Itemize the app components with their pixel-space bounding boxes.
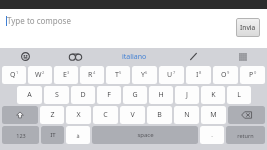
staticText: L (237, 90, 241, 100)
staticText: F (107, 90, 111, 100)
button[interactable]: B (147, 106, 172, 124)
button[interactable]: D (71, 86, 95, 104)
staticText: R (88, 70, 93, 80)
staticText: Invia (240, 23, 256, 32)
button[interactable]: T (106, 66, 130, 84)
button[interactable]: I (186, 66, 211, 84)
button[interactable]: E (54, 66, 78, 84)
staticText: IT (50, 131, 56, 139)
staticText: G (132, 90, 138, 100)
button[interactable]: italiano (100, 48, 169, 65)
staticText: 9 (227, 70, 230, 75)
staticText: W (35, 70, 42, 80)
button[interactable]: P (240, 66, 265, 84)
staticText: 5 (119, 70, 122, 75)
staticText: 2 (42, 70, 45, 75)
button[interactable]: U (159, 66, 184, 84)
button[interactable]: F (97, 86, 121, 104)
button[interactable]: Shift (2, 106, 38, 124)
staticText: D (80, 90, 86, 100)
staticText: Z (50, 110, 55, 120)
button[interactable]: Invia (236, 18, 260, 37)
staticText: 7 (173, 70, 176, 75)
staticText: C (103, 110, 108, 120)
button[interactable]: Handwriting (169, 48, 218, 65)
button[interactable]: 123 (2, 126, 39, 144)
button[interactable]: return (226, 126, 265, 144)
button[interactable]: K (201, 86, 225, 104)
button[interactable]: V (120, 106, 145, 124)
staticText: Type to compose (7, 15, 71, 26)
button[interactable]: R (80, 66, 104, 84)
staticText: space (137, 131, 154, 139)
staticText: M (210, 110, 217, 120)
staticText: . (211, 131, 213, 139)
button[interactable]: IT (41, 126, 64, 144)
button[interactable]: Emoji (0, 48, 50, 65)
staticText: K (211, 90, 216, 100)
button[interactable]: Keyboard layout (218, 48, 267, 65)
button[interactable]: Y (132, 66, 157, 84)
staticText: U (167, 70, 173, 80)
staticText: 4 (93, 70, 96, 75)
staticText: S (55, 90, 59, 100)
staticText: Y (141, 70, 145, 80)
button[interactable]: space (92, 126, 198, 144)
button[interactable]: S (44, 86, 69, 104)
staticText: Q (10, 70, 16, 80)
staticText: I (196, 70, 199, 80)
staticText: O (221, 70, 227, 80)
staticText: 6 (145, 70, 148, 75)
staticText: X (76, 110, 81, 120)
button[interactable]: A (17, 86, 42, 104)
staticText: 8 (199, 70, 202, 75)
button[interactable]: H (149, 86, 173, 104)
staticText: A (27, 90, 32, 100)
button[interactable]: N (174, 106, 199, 124)
staticText: return (237, 132, 254, 139)
button[interactable]: L (227, 86, 251, 104)
staticText: V (130, 110, 135, 120)
staticText: T (115, 70, 119, 80)
button[interactable]: Backspace (228, 106, 265, 124)
button[interactable]: J (175, 86, 199, 104)
staticText: italiano (122, 52, 147, 62)
staticText: 123 (16, 132, 26, 139)
staticText: 3 (67, 70, 70, 75)
staticText: J (186, 90, 188, 100)
button[interactable]: Voice input (50, 48, 100, 65)
button[interactable]: M (201, 106, 226, 124)
button[interactable]: O (213, 66, 238, 84)
staticText: N (184, 110, 190, 120)
button[interactable]: C (93, 106, 118, 124)
button[interactable]: W (28, 66, 52, 84)
button[interactable]: à (66, 126, 90, 144)
button[interactable]: G (123, 86, 147, 104)
button[interactable]: . (200, 126, 224, 144)
staticText: à (76, 132, 80, 139)
button[interactable]: Q (2, 66, 26, 84)
button[interactable]: Z (40, 106, 64, 124)
staticText: P (249, 70, 254, 80)
staticText: 0 (254, 70, 257, 75)
staticText: B (157, 110, 162, 120)
staticText: 1 (16, 70, 19, 75)
button[interactable]: X (66, 106, 91, 124)
staticText: E (63, 70, 67, 80)
staticText: H (158, 90, 164, 100)
